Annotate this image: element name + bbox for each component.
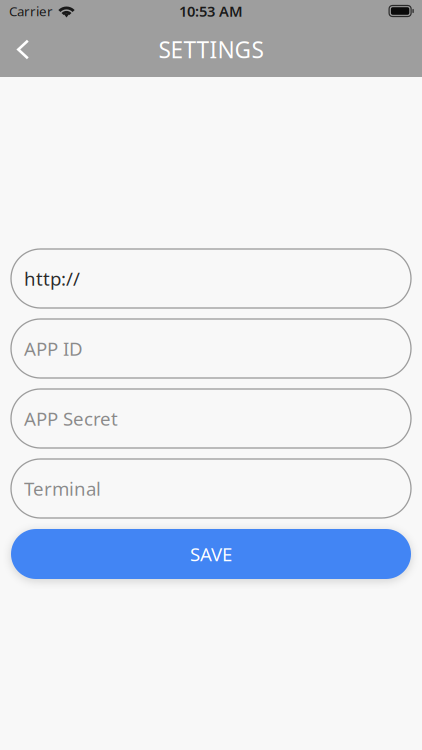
staticText: Carrier <box>9 2 53 20</box>
button[interactable]: SAVE <box>11 529 411 579</box>
staticText: http:// <box>24 266 80 291</box>
button[interactable]: Back <box>0 22 46 77</box>
staticText: Terminal <box>24 476 101 501</box>
staticText: SETTINGS <box>158 34 263 64</box>
staticText: APP ID <box>24 336 83 361</box>
staticText: SAVE <box>190 542 232 566</box>
staticText: 10:53 AM <box>179 1 243 21</box>
staticText: APP Secret <box>24 406 118 431</box>
